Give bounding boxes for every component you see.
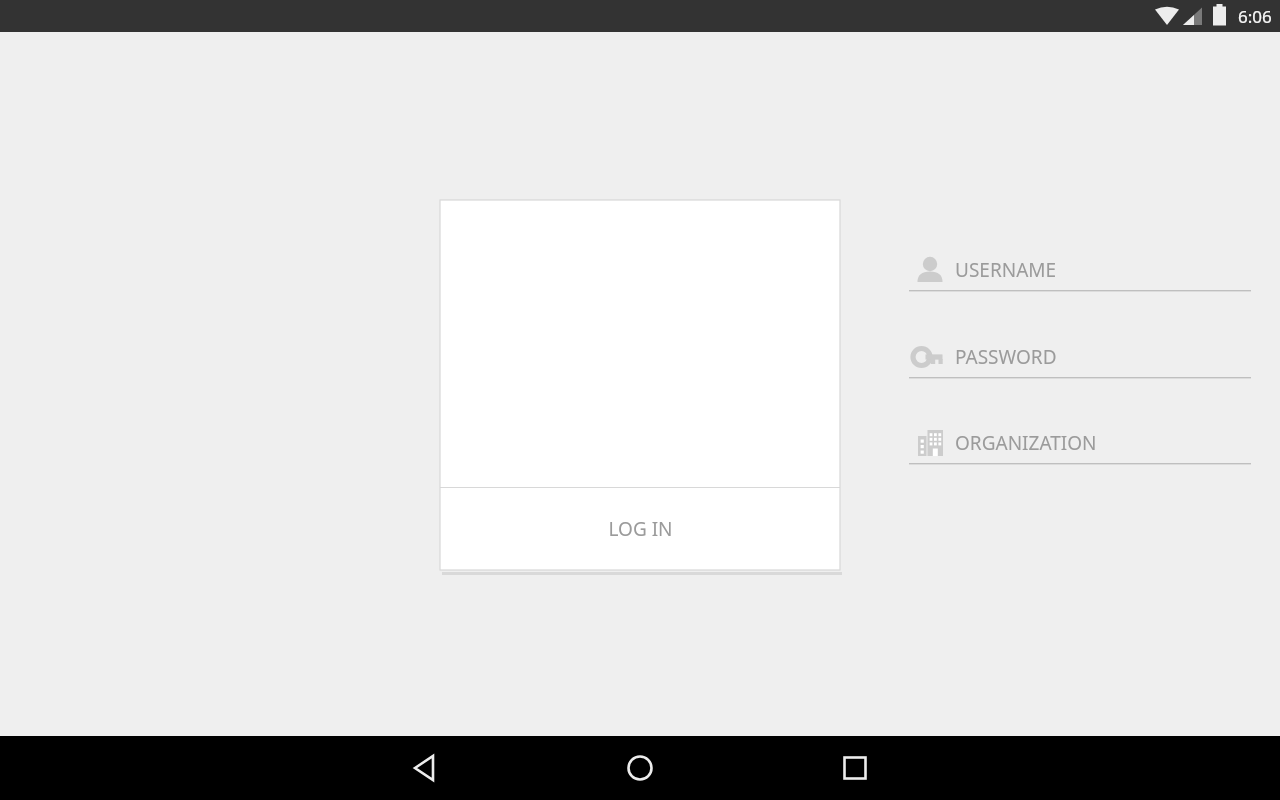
button[interactable]: Recent apps: [825, 752, 885, 784]
button[interactable]: PASSWORD: [909, 335, 1251, 379]
button[interactable]: Back: [395, 752, 455, 784]
button[interactable]: Home: [610, 752, 670, 784]
staticText: USERNAME: [955, 257, 1057, 283]
staticText: LOG IN: [608, 516, 673, 542]
button[interactable]: LOG IN: [440, 488, 840, 570]
staticText: 6:06: [1238, 5, 1272, 28]
button[interactable]: USERNAME: [909, 248, 1251, 292]
button[interactable]: ORGANIZATION: [909, 421, 1251, 465]
staticText: PASSWORD: [955, 344, 1057, 370]
staticText: ORGANIZATION: [955, 430, 1097, 456]
